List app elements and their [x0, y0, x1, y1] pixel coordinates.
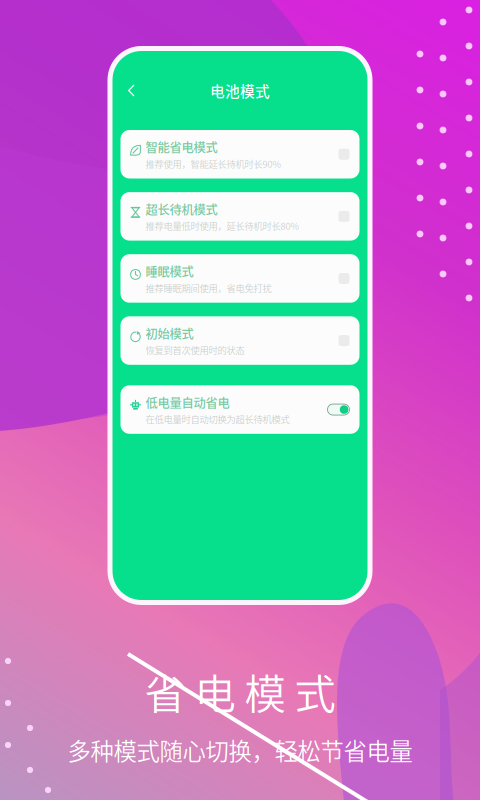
staticText: 电池模式: [210, 80, 270, 101]
staticText: 多种模式随心切换，轻松节省电量: [67, 733, 412, 767]
staticText: 低电量自动省电: [145, 393, 229, 411]
staticText: 在低电量时自动切换为超长待机模式: [145, 412, 289, 426]
staticText: 智能省电模式: [145, 138, 217, 156]
staticText: 恢复到首次使用时的状态: [145, 343, 244, 357]
staticText: 睡眠模式: [145, 262, 193, 280]
staticText: 推荐使用，智能延长待机时长90%: [145, 157, 281, 170]
button[interactable]: 智能省电模式: [120, 130, 359, 178]
staticText: 超长待机模式: [145, 200, 217, 218]
button[interactable]: 超长待机模式: [120, 192, 359, 241]
button[interactable]: 返回: [119, 76, 144, 105]
button[interactable]: 初始模式: [120, 316, 359, 365]
staticText: 推荐电量低时使用，延长待机时长80%: [145, 219, 299, 232]
staticText: 推荐睡眠期间使用，省电免打扰: [145, 281, 271, 295]
staticText: 省 电 模 式: [144, 661, 335, 721]
button[interactable]: 睡眠模式: [120, 254, 359, 303]
staticText: 初始模式: [145, 324, 193, 342]
button[interactable]: 低电量自动省电: [120, 385, 359, 434]
